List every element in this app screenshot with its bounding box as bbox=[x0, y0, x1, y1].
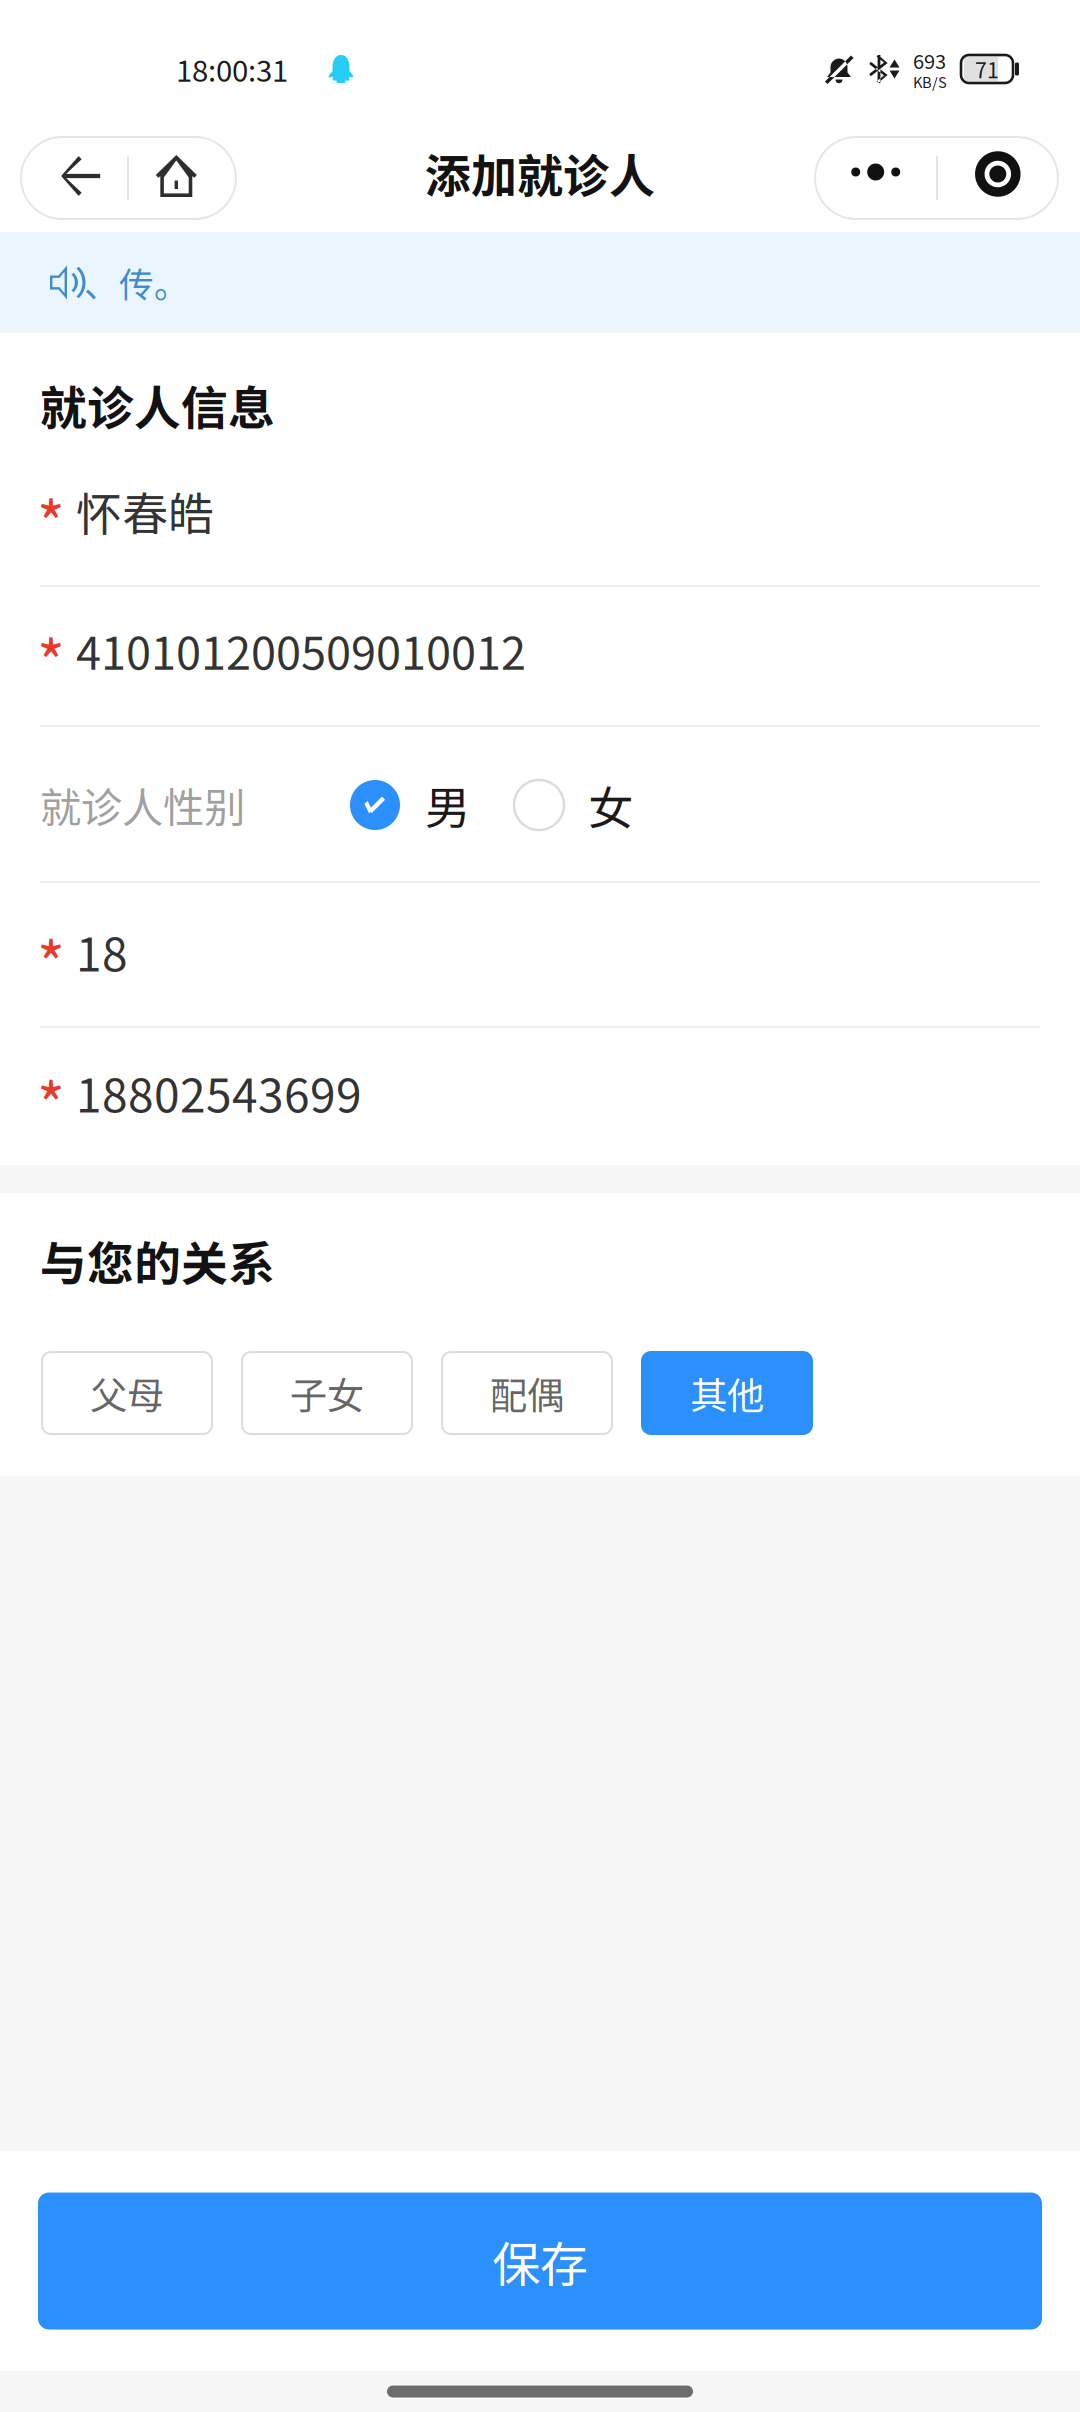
button[interactable]: 保存 bbox=[38, 2192, 1042, 2329]
button[interactable]: 其他 bbox=[642, 1352, 812, 1434]
staticText: 其他 bbox=[690, 1366, 764, 1420]
staticText: KB/S bbox=[913, 71, 947, 92]
staticText: 693 bbox=[913, 46, 946, 75]
staticText: 怀春皓 bbox=[76, 478, 214, 544]
staticText: 、传。 bbox=[84, 257, 189, 308]
button[interactable]: 父母 bbox=[42, 1352, 212, 1434]
staticText: 子女 bbox=[290, 1366, 364, 1420]
button[interactable]: 女 bbox=[514, 772, 633, 838]
button[interactable]: 男 bbox=[350, 772, 470, 838]
staticText: * bbox=[37, 1059, 65, 1146]
staticText: 保存 bbox=[492, 2226, 588, 2296]
staticText: 女 bbox=[588, 772, 633, 838]
staticText: 就诊人信息 bbox=[40, 371, 275, 439]
staticText: 410101200509010012 bbox=[76, 617, 526, 683]
button[interactable]: * bbox=[0, 883, 1080, 1026]
staticText: 18:00:31 bbox=[176, 48, 288, 90]
button[interactable]: More options bbox=[815, 137, 936, 219]
staticText: 父母 bbox=[90, 1366, 164, 1420]
staticText: 18802543699 bbox=[76, 1059, 362, 1126]
button[interactable]: * bbox=[0, 587, 1080, 725]
button[interactable]: 配偶 bbox=[442, 1352, 612, 1434]
staticText: 配偶 bbox=[490, 1366, 564, 1420]
staticText: 就诊人性别 bbox=[40, 775, 245, 835]
staticText: 71 bbox=[975, 54, 999, 84]
staticText: * bbox=[37, 918, 65, 1005]
staticText: 18 bbox=[76, 918, 128, 985]
button[interactable]: 子女 bbox=[242, 1352, 412, 1434]
staticText: 与您的关系 bbox=[40, 1227, 275, 1294]
staticText: * bbox=[37, 478, 65, 564]
button[interactable]: Back bbox=[21, 137, 127, 219]
staticText: 添加就诊人 bbox=[425, 140, 655, 206]
staticText: 男 bbox=[425, 772, 470, 838]
button[interactable]: * bbox=[0, 445, 1080, 585]
staticText: * bbox=[37, 617, 65, 703]
button[interactable]: 、传。 bbox=[0, 232, 1080, 333]
button[interactable]: Home bbox=[129, 137, 236, 219]
button[interactable]: * bbox=[0, 1028, 1080, 1165]
button[interactable]: Close mini program bbox=[938, 137, 1058, 219]
